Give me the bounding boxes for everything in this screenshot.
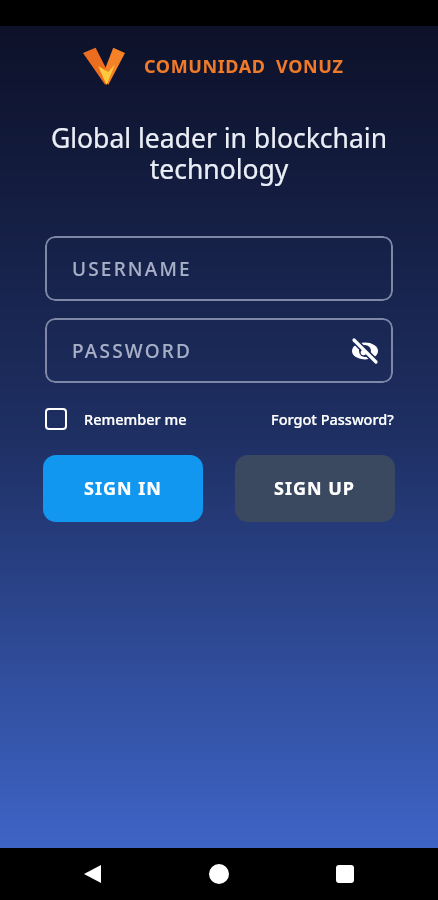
staticText: Global leader in blockchain technology [0, 120, 438, 187]
staticText: SIGN UP [274, 476, 356, 501]
button[interactable]: PASSWORD [45, 318, 393, 383]
button[interactable]: Forgot Password? [271, 409, 394, 429]
staticText: PASSWORD [72, 338, 193, 364]
button[interactable] [191, 848, 247, 900]
staticText: SIGN IN [84, 476, 162, 501]
button[interactable] [64, 848, 120, 900]
button[interactable]: USERNAME [45, 236, 393, 301]
button[interactable] [317, 848, 373, 900]
button[interactable] [351, 337, 379, 365]
button[interactable]: Remember me [45, 408, 187, 430]
button[interactable]: SIGN UP [235, 455, 395, 522]
button[interactable]: SIGN IN [43, 455, 203, 522]
staticText: USERNAME [72, 256, 192, 282]
staticText: COMUNIDAD VONUZ [144, 54, 344, 79]
staticText: Remember me [84, 409, 187, 429]
